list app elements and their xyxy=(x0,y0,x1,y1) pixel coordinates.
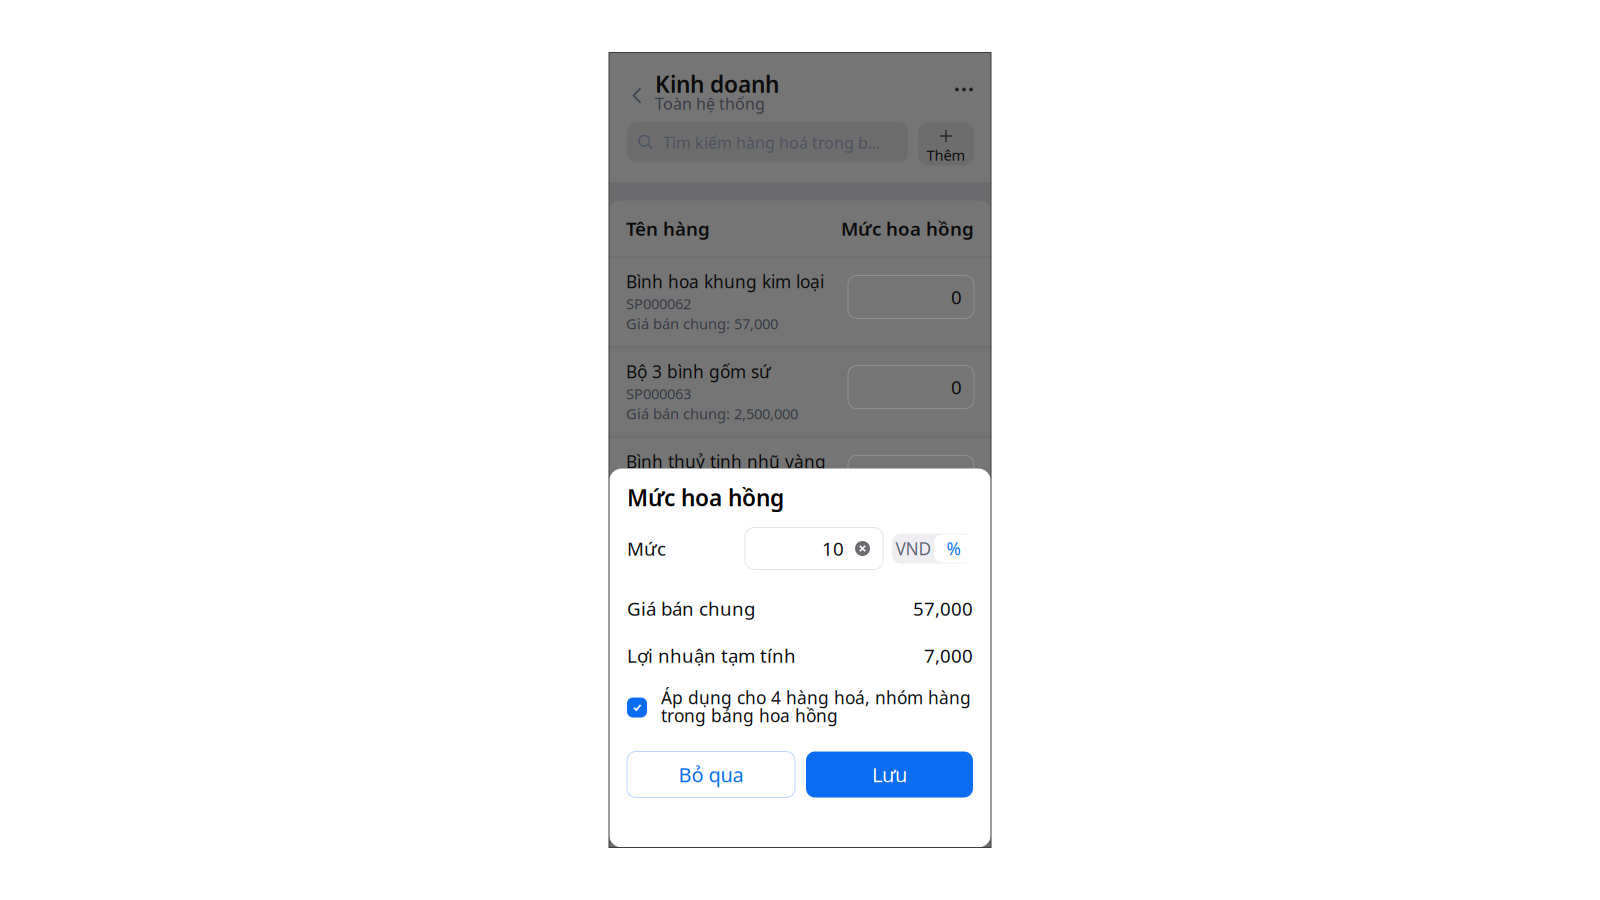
staticText: % xyxy=(946,537,960,560)
staticText: 0 xyxy=(951,465,962,489)
button[interactable]: Bỏ qua xyxy=(627,751,795,797)
button[interactable]: % xyxy=(934,534,973,562)
staticText: Giá bán chung: 57,000 xyxy=(626,314,778,333)
button[interactable]: Tìm kiếm hàng hoá trong bảng xyxy=(627,122,908,163)
staticText: Áp dụng cho 4 hàng hoá, nhóm hàng xyxy=(661,686,971,709)
staticText: 7,000 xyxy=(924,643,973,668)
staticText: Giá bán chung xyxy=(627,596,755,621)
button[interactable]: Áp dụng cho 4 hàng hoá, nhóm hàng xyxy=(627,691,985,727)
staticText: SP000063 xyxy=(626,384,691,403)
button[interactable]: Thêm xyxy=(918,119,974,165)
staticText: Tên hàng xyxy=(626,216,710,241)
staticText: Bộ 3 bình gốm sứ xyxy=(626,360,771,383)
button[interactable]: Mức hoa hồng Bộ 3 bình gốm sứ xyxy=(848,359,974,408)
button[interactable]: Mức hoa hồng Bình thuỷ tinh nhũ vàng xyxy=(848,449,974,498)
staticText: Thêm xyxy=(926,145,965,165)
staticText: Bình hoa khung kim loại xyxy=(626,270,824,293)
staticText: SP000062 xyxy=(626,294,691,313)
staticText: 0 xyxy=(951,285,962,309)
staticText: 0 xyxy=(951,375,962,399)
button[interactable]: Mức hoa hồng Bình hoa khung kim loại xyxy=(848,269,974,318)
staticText: Mức xyxy=(627,536,666,561)
button[interactable]: Mức: 10 xyxy=(745,527,883,569)
staticText: Lưu xyxy=(872,761,907,788)
staticText: Mức hoa hồng xyxy=(841,216,974,241)
staticText: Kinh doanh xyxy=(655,69,779,99)
button[interactable]: Quay lại xyxy=(632,72,655,112)
staticText: Tìm kiếm hàng hoá trong b... xyxy=(663,132,880,153)
button[interactable]: VND xyxy=(893,533,934,563)
staticText: Giá bán chung: 2,500,000 xyxy=(626,404,798,423)
button[interactable]: Tuỳ chọn xyxy=(951,72,977,106)
staticText: Giá bán chung: 120,000 xyxy=(626,494,786,513)
staticText: trong bảng hoa hồng xyxy=(661,704,838,727)
staticText: Mức hoa hồng xyxy=(627,482,784,512)
button[interactable]: Lưu xyxy=(806,751,973,797)
staticText: Bỏ qua xyxy=(678,761,743,788)
staticText: SP000064 xyxy=(626,474,691,493)
staticText: Toàn hệ thống xyxy=(655,93,765,114)
staticText: 10 xyxy=(822,536,844,561)
staticText: 57,000 xyxy=(913,596,973,621)
staticText: VND xyxy=(895,537,931,560)
staticText: Lợi nhuận tạm tính xyxy=(627,643,796,668)
staticText: Bình thuỷ tinh nhũ vàng xyxy=(626,450,826,473)
